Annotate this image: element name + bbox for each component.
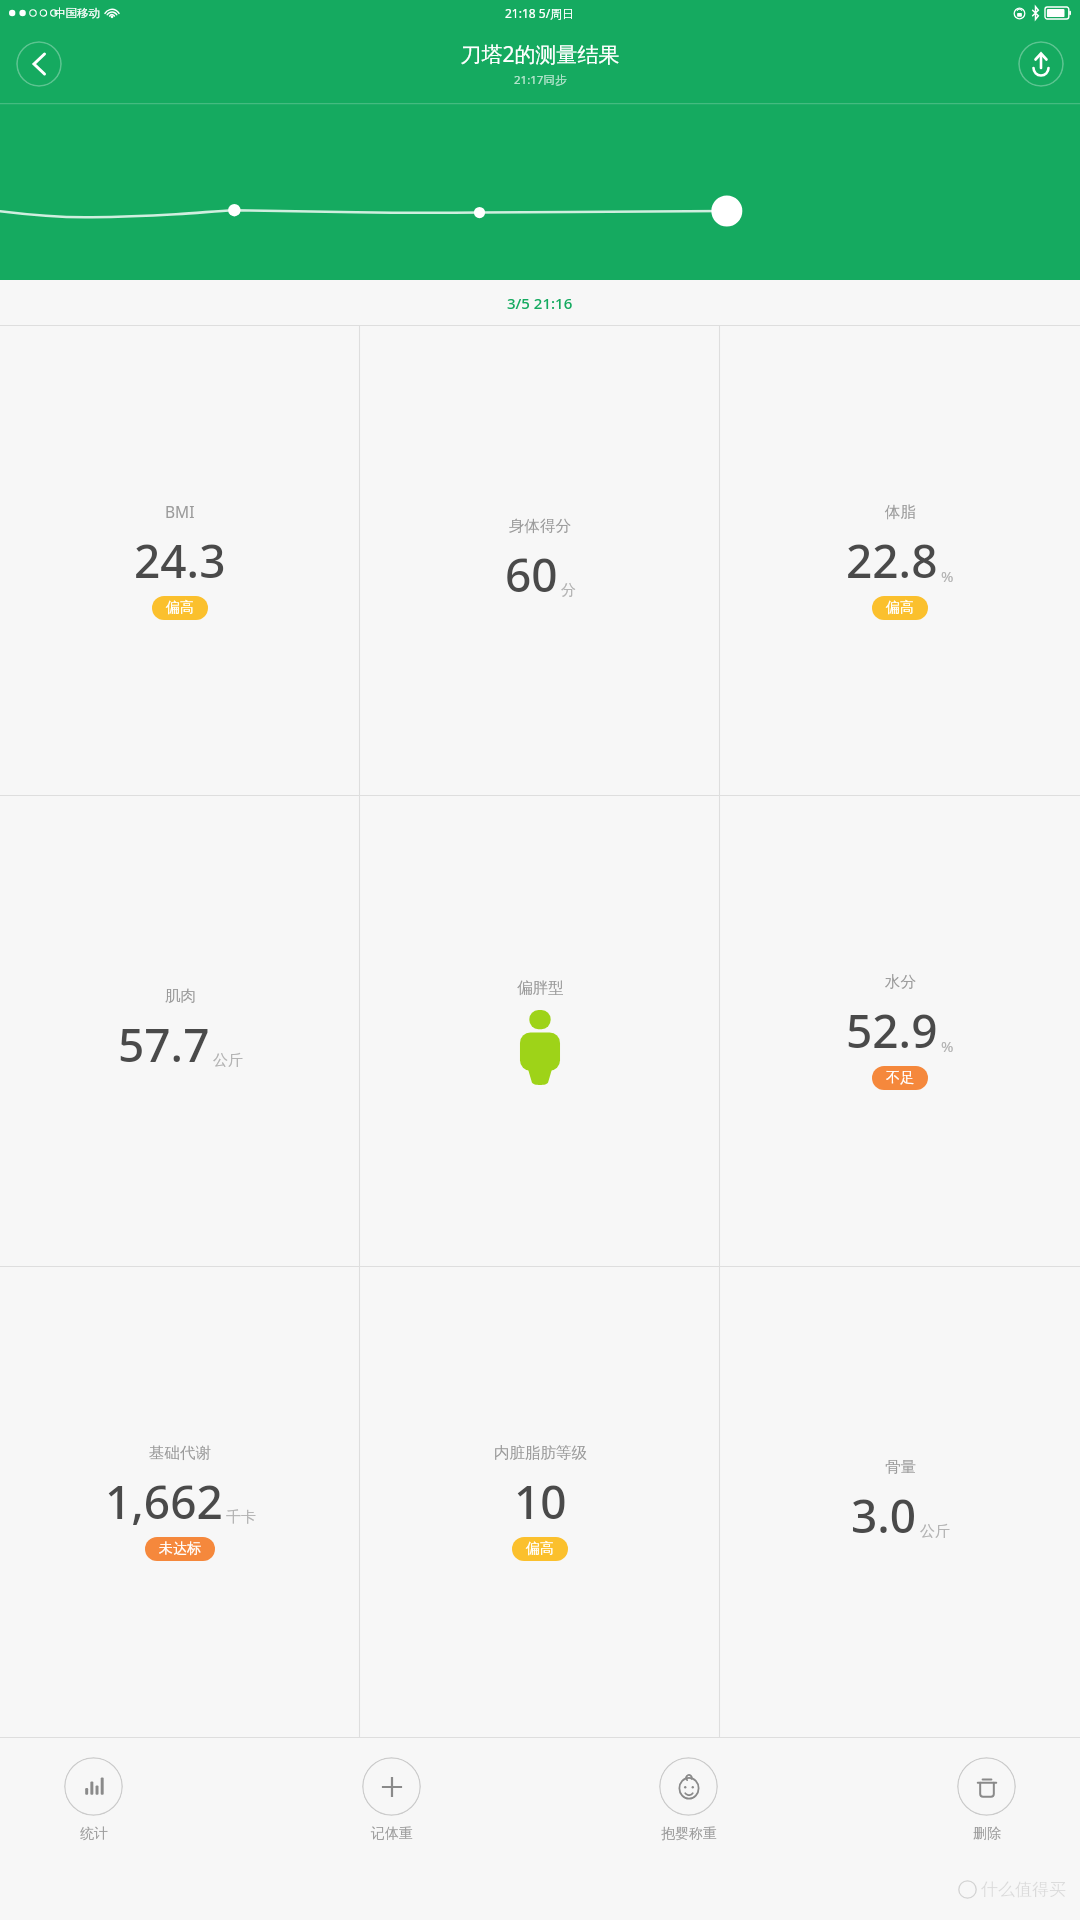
staticText: % (941, 1036, 954, 1056)
button[interactable]: 记体重 (358, 1757, 425, 1843)
button[interactable]: 基础代谢 (0, 1267, 360, 1737)
staticText: 抱婴称重 (661, 1825, 717, 1843)
button[interactable]: 骨量 (720, 1267, 1080, 1737)
button[interactable]: 抱婴称重 (655, 1757, 722, 1843)
staticText: 3/5 21:16 (507, 293, 573, 313)
other: 抱婴称重 (676, 1774, 702, 1800)
staticText: 10 (514, 1470, 567, 1533)
button[interactable]: 体脂 (720, 326, 1080, 795)
staticText: 24.3 (134, 529, 226, 592)
staticText: 22.8 (846, 529, 938, 592)
staticText: % (941, 566, 954, 586)
staticText: 肌肉 (165, 986, 196, 1006)
button[interactable]: 统计 (60, 1757, 127, 1843)
staticText: 21:17同步 (514, 72, 567, 88)
staticText: 偏胖型 (517, 978, 564, 998)
staticText: 21:18 5/周日 (505, 5, 575, 21)
staticText: 57.7 (118, 1013, 210, 1076)
staticText: 记体重 (371, 1825, 413, 1843)
other: 统计 (83, 1776, 105, 1798)
button[interactable]: 删除 (953, 1757, 1020, 1843)
staticText: 52.9 (846, 999, 938, 1062)
staticText: 偏高 (166, 599, 194, 617)
button[interactable]: Share (1018, 41, 1064, 87)
staticText: 删除 (973, 1825, 1001, 1843)
other: 记体重 (380, 1775, 404, 1799)
staticText: 千卡 (226, 1508, 256, 1527)
button[interactable]: 未达标 (145, 1537, 215, 1561)
staticText: 未达标 (159, 1540, 201, 1558)
button[interactable]: BMI (0, 326, 360, 795)
staticText: 基础代谢 (149, 1443, 211, 1463)
button[interactable]: 偏高 (872, 596, 928, 620)
button[interactable]: 偏高 (152, 596, 208, 620)
button[interactable]: Back (16, 41, 62, 87)
staticText: 中国移动 (54, 6, 100, 20)
staticText: 3.0 (851, 1484, 917, 1547)
button[interactable]: 水分 (720, 796, 1080, 1266)
button[interactable]: 身体得分 (360, 326, 720, 795)
staticText: 统计 (80, 1825, 108, 1843)
staticText: 公斤 (213, 1051, 243, 1070)
staticText: 体脂 (885, 502, 916, 522)
other: 删除 (976, 1776, 998, 1798)
staticText: BMI (165, 501, 195, 522)
staticText: 偏高 (526, 1540, 554, 1558)
button[interactable]: 不足 (872, 1066, 928, 1090)
button[interactable]: 偏高 (512, 1537, 568, 1561)
staticText: 身体得分 (509, 516, 571, 536)
button[interactable]: 内脏脂肪等级 (360, 1267, 720, 1737)
staticText: 60 (505, 543, 558, 606)
staticText: 骨量 (885, 1457, 916, 1477)
button[interactable]: 肌肉 (0, 796, 360, 1266)
staticText: 刀塔2的测量结果 (460, 40, 620, 69)
staticText: 1,662 (105, 1470, 223, 1533)
staticText: 公斤 (920, 1522, 950, 1541)
staticText: 水分 (885, 972, 916, 992)
staticText: 分 (561, 581, 576, 600)
staticText: 什么值得买 (981, 1879, 1066, 1900)
staticText: 不足 (886, 1069, 914, 1087)
staticText: 内脏脂肪等级 (494, 1443, 587, 1463)
button[interactable]: 偏胖型 (360, 796, 720, 1266)
staticText: 偏高 (886, 599, 914, 617)
